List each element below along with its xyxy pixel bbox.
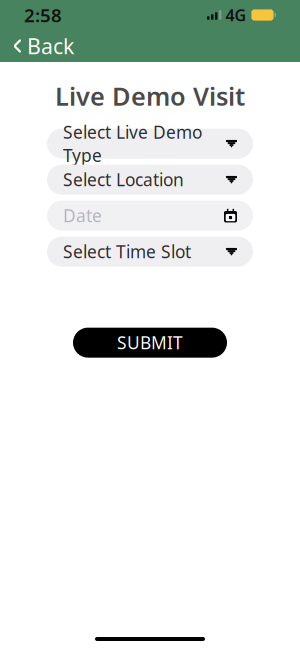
button[interactable]: SUBMIT [73, 328, 227, 358]
staticText: Select Live Demo Type [63, 121, 202, 167]
button[interactable]: Select Time Slot [47, 237, 253, 267]
staticText: Select Time Slot [63, 240, 191, 263]
staticText: Live Demo Visit [55, 79, 245, 113]
button[interactable]: Select Live Demo Type [47, 129, 253, 159]
staticText: 4G [225, 4, 246, 26]
staticText: 2:58 [24, 3, 62, 27]
staticText: Select Location [63, 168, 184, 191]
button[interactable]: Back [2, 26, 84, 66]
staticText: Back [27, 32, 74, 60]
button[interactable]: Select Location [47, 165, 253, 195]
staticText: Date [63, 204, 102, 227]
staticText: SUBMIT [117, 331, 183, 354]
button[interactable]: Date [47, 201, 253, 231]
